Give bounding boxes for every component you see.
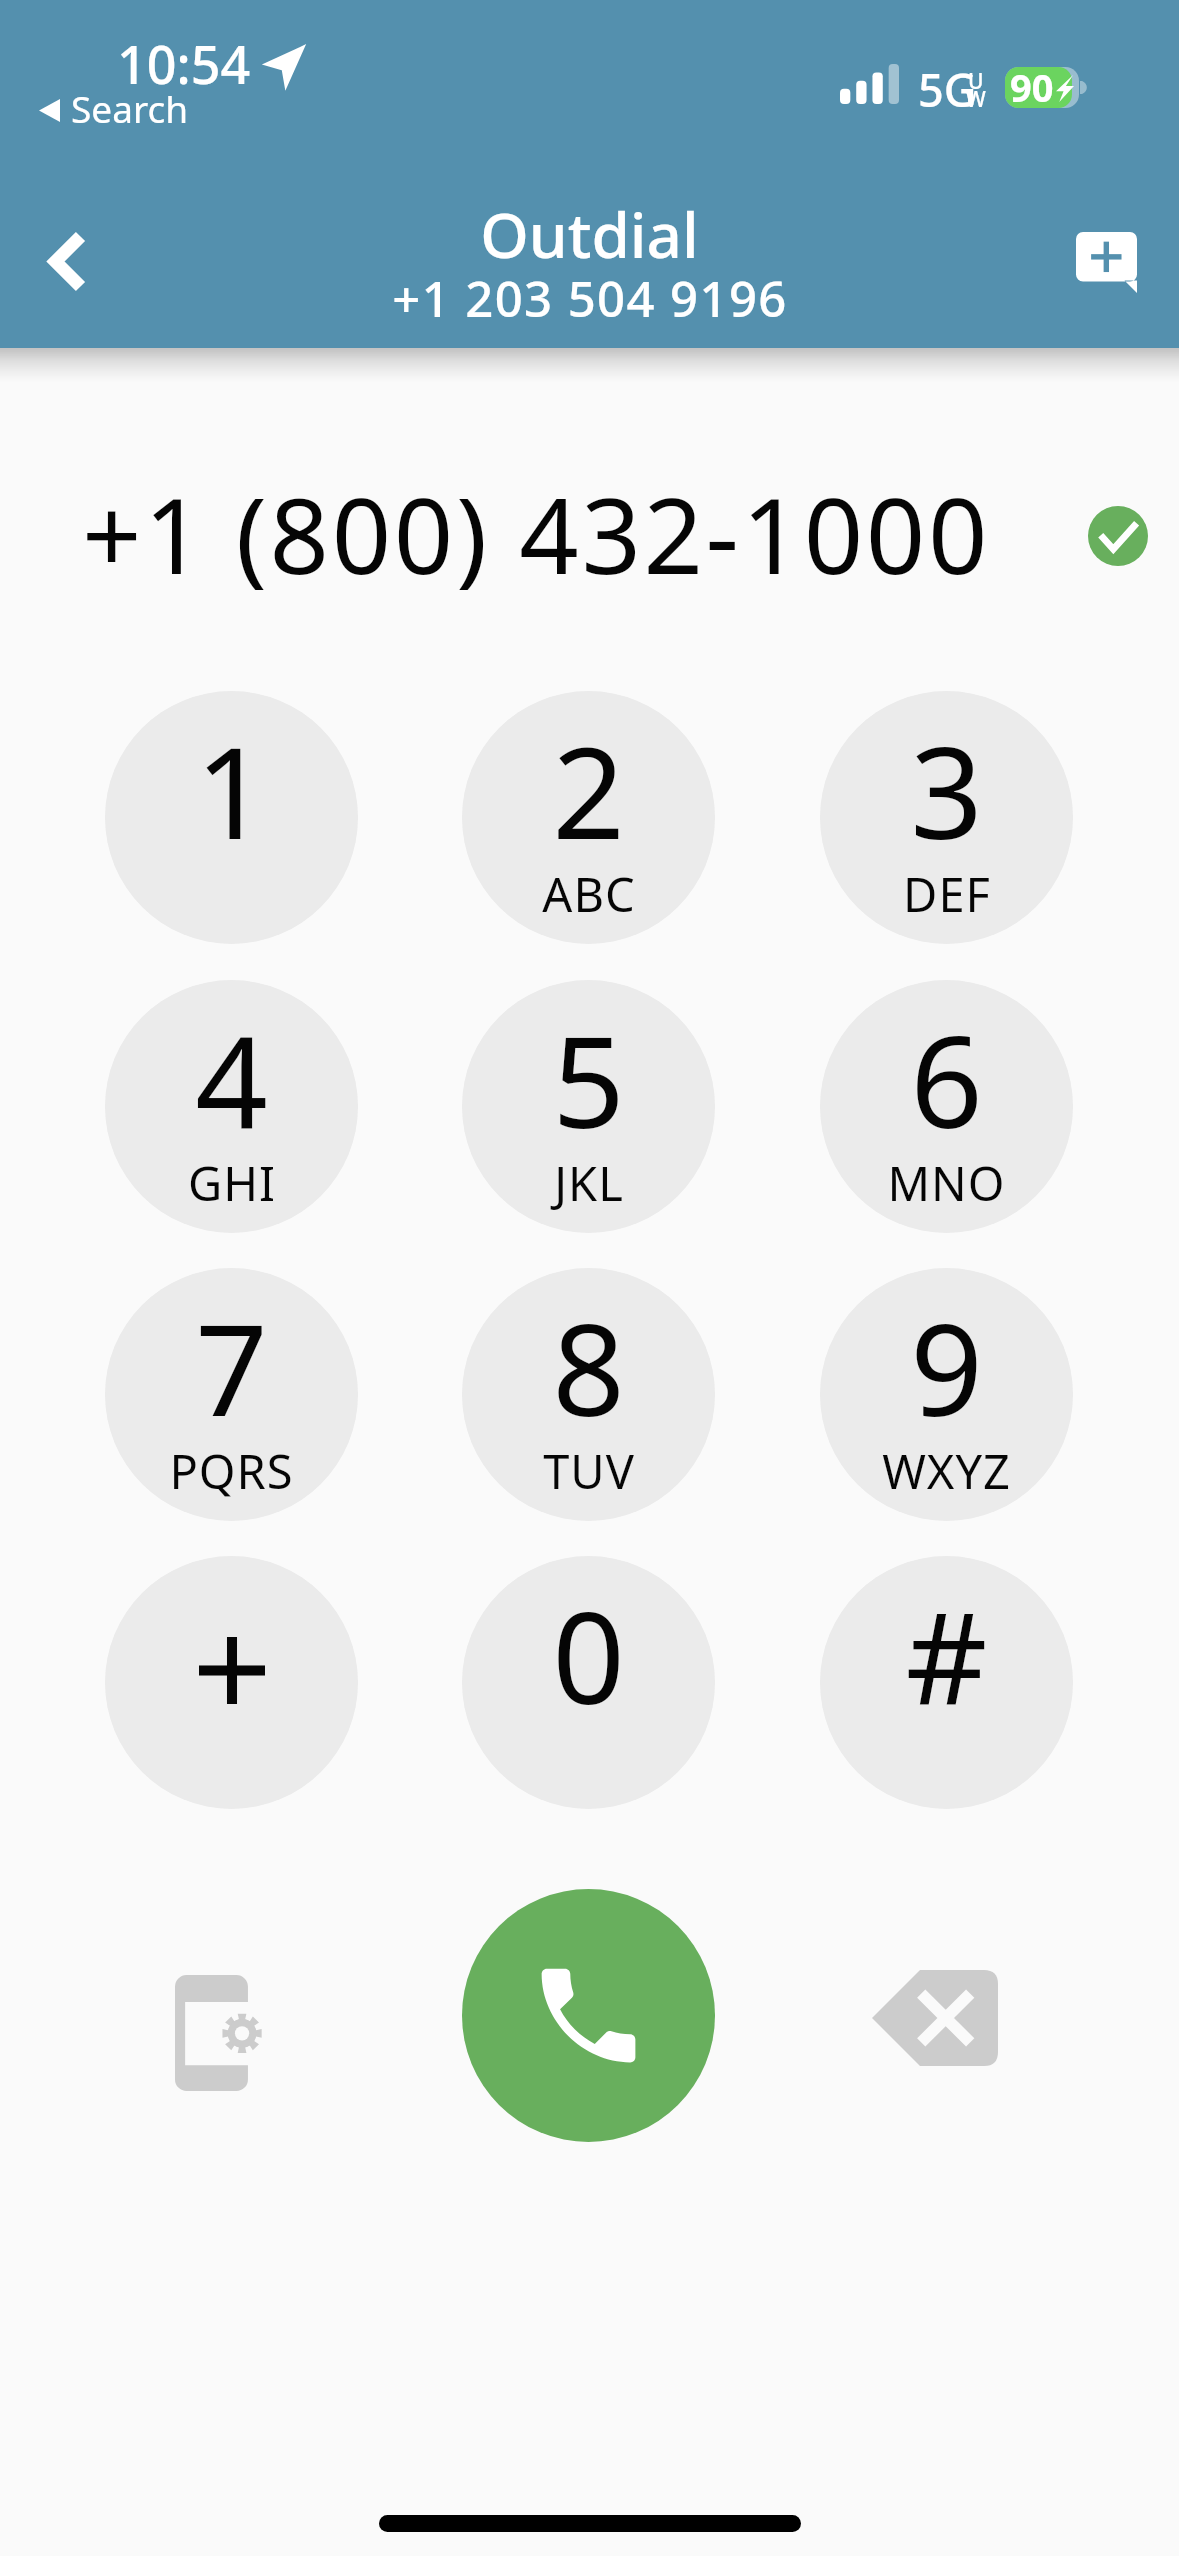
button[interactable]: 7 (105, 1268, 358, 1521)
button[interactable]: 0 (462, 1556, 715, 1809)
staticText: Search (71, 83, 189, 131)
button[interactable]: Call settings (129, 1943, 309, 2123)
staticText: ABC (542, 862, 636, 926)
button[interactable]: # (820, 1556, 1073, 1809)
button[interactable]: 6 (820, 980, 1073, 1233)
button[interactable]: Call (462, 1889, 715, 2142)
staticText: 1 (195, 703, 268, 876)
staticText: W (966, 85, 986, 114)
staticText: Outdial (480, 192, 699, 276)
staticText: MNO (887, 1151, 1006, 1215)
button[interactable]: 9 (820, 1268, 1073, 1521)
button[interactable]: Number verified (1088, 506, 1148, 566)
staticText: # (905, 1568, 988, 1741)
button[interactable]: 8 (462, 1268, 715, 1521)
button[interactable]: New message (1046, 202, 1166, 322)
staticText: TUV (543, 1439, 635, 1503)
staticText: 9 (910, 1280, 983, 1453)
button[interactable]: Delete (845, 1928, 1025, 2108)
button[interactable]: 4 (105, 980, 358, 1233)
staticText: 8 (552, 1280, 625, 1453)
button[interactable]: Plus (105, 1556, 358, 1809)
button[interactable]: Search (30, 80, 190, 128)
button[interactable]: Back (8, 201, 128, 321)
staticText: 6 (910, 992, 983, 1165)
staticText: +1 (800) 432-1000 (82, 463, 991, 605)
staticText: 4 (195, 992, 268, 1165)
button[interactable]: 5 (462, 980, 715, 1233)
staticText: U (968, 67, 984, 96)
button[interactable]: 1 (105, 691, 358, 944)
staticText: 0 (552, 1568, 625, 1741)
staticText: 5 (552, 992, 625, 1165)
staticText: GHI (188, 1151, 276, 1215)
staticText: PQRS (169, 1439, 294, 1503)
staticText: 10:54 (117, 28, 251, 99)
staticText: DEF (903, 862, 991, 926)
button[interactable]: 3 (820, 691, 1073, 944)
staticText: 90 (1010, 61, 1054, 113)
staticText: 7 (195, 1280, 268, 1453)
staticText: JKL (554, 1151, 624, 1215)
staticText: +1 203 504 9196 (392, 265, 788, 332)
staticText: 3 (910, 703, 983, 876)
staticText: WXYZ (882, 1439, 1011, 1503)
staticText: 5G (918, 59, 977, 120)
staticText: 2 (552, 703, 625, 876)
button[interactable]: 2 (462, 691, 715, 944)
